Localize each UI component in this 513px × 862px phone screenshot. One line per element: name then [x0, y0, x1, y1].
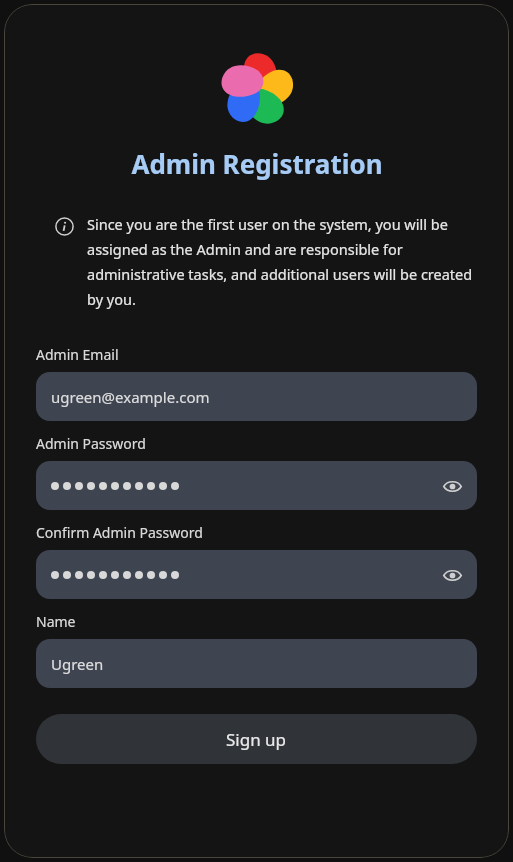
staticText: Ugreen: [51, 654, 104, 674]
staticText: Confirm Admin Password: [36, 523, 203, 542]
button[interactable]: Show password: [439, 562, 465, 588]
button[interactable]: Admin Password field: [36, 461, 477, 510]
button[interactable]: Sign up: [36, 714, 477, 764]
staticText: ugreen@example.com: [51, 387, 210, 407]
button[interactable]: Confirm Admin Password field: [36, 550, 477, 599]
button[interactable]: Name field: [36, 639, 477, 688]
staticText: Name: [36, 612, 76, 631]
staticText: Admin Email: [36, 345, 119, 364]
staticText: Sign up: [226, 728, 287, 751]
button[interactable]: Show password: [439, 473, 465, 499]
staticText: Admin Password: [36, 434, 146, 453]
staticText: Since you are the first user on the syst…: [87, 214, 477, 309]
staticText: Admin Registration: [131, 146, 383, 181]
button[interactable]: Admin Email field: [36, 372, 477, 421]
